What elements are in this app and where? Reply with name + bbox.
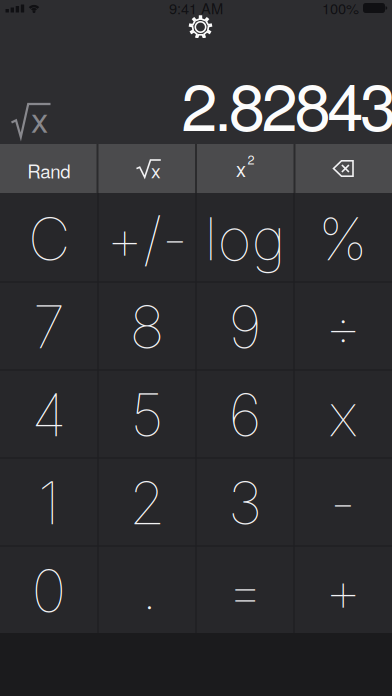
- staticText: x: [236, 154, 246, 183]
- staticText: 8: [129, 291, 164, 362]
- staticText: %: [318, 203, 368, 274]
- button[interactable]: x: [197, 144, 293, 193]
- staticText: 6: [228, 379, 261, 450]
- button[interactable]: x: [98, 144, 195, 193]
- button[interactable]: 0: [0, 545, 98, 633]
- staticText: .: [141, 552, 157, 623]
- staticText: +: [324, 555, 361, 626]
- staticText: 2.82843: [181, 56, 392, 150]
- staticText: x: [328, 379, 357, 450]
- button[interactable]: Settings: [174, 16, 218, 38]
- staticText: 2: [247, 150, 254, 168]
- staticText: 5: [130, 379, 163, 450]
- staticText: C: [28, 203, 70, 274]
- button[interactable]: x: [294, 369, 392, 457]
- staticText: 4: [31, 379, 66, 450]
- button[interactable]: -: [294, 457, 392, 545]
- button[interactable]: log: [196, 193, 294, 281]
- button[interactable]: 7: [0, 281, 98, 369]
- staticText: 100%: [322, 0, 359, 18]
- staticText: 2: [129, 467, 165, 538]
- button[interactable]: 3: [196, 457, 294, 545]
- staticText: 3: [228, 467, 262, 538]
- staticText: -: [330, 467, 356, 538]
- staticText: x: [31, 93, 48, 143]
- staticText: =: [226, 555, 263, 626]
- button[interactable]: +/-: [98, 193, 196, 281]
- staticText: x: [151, 156, 161, 184]
- button[interactable]: C: [0, 193, 98, 281]
- button[interactable]: .: [98, 545, 196, 633]
- staticText: ÷: [324, 291, 361, 362]
- button[interactable]: %: [294, 193, 392, 281]
- button[interactable]: 2: [98, 457, 196, 545]
- button[interactable]: ÷: [294, 281, 392, 369]
- staticText: +/-: [106, 203, 188, 274]
- staticText: 0: [31, 555, 66, 626]
- button[interactable]: Rand: [0, 144, 96, 193]
- button[interactable]: 5: [98, 369, 196, 457]
- button[interactable]: 9: [196, 281, 294, 369]
- staticText: 7: [33, 291, 65, 362]
- button[interactable]: Delete: [295, 144, 392, 193]
- button[interactable]: +: [294, 545, 392, 633]
- staticText: 9:41 AM: [169, 0, 223, 18]
- button[interactable]: 4: [0, 369, 98, 457]
- staticText: 9: [228, 291, 261, 362]
- button[interactable]: =: [196, 545, 294, 633]
- staticText: 1: [38, 467, 60, 538]
- button[interactable]: 8: [98, 281, 196, 369]
- button[interactable]: 1: [0, 457, 98, 545]
- button[interactable]: 6: [196, 369, 294, 457]
- staticText: log: [204, 203, 285, 274]
- staticText: Rand: [27, 157, 70, 184]
